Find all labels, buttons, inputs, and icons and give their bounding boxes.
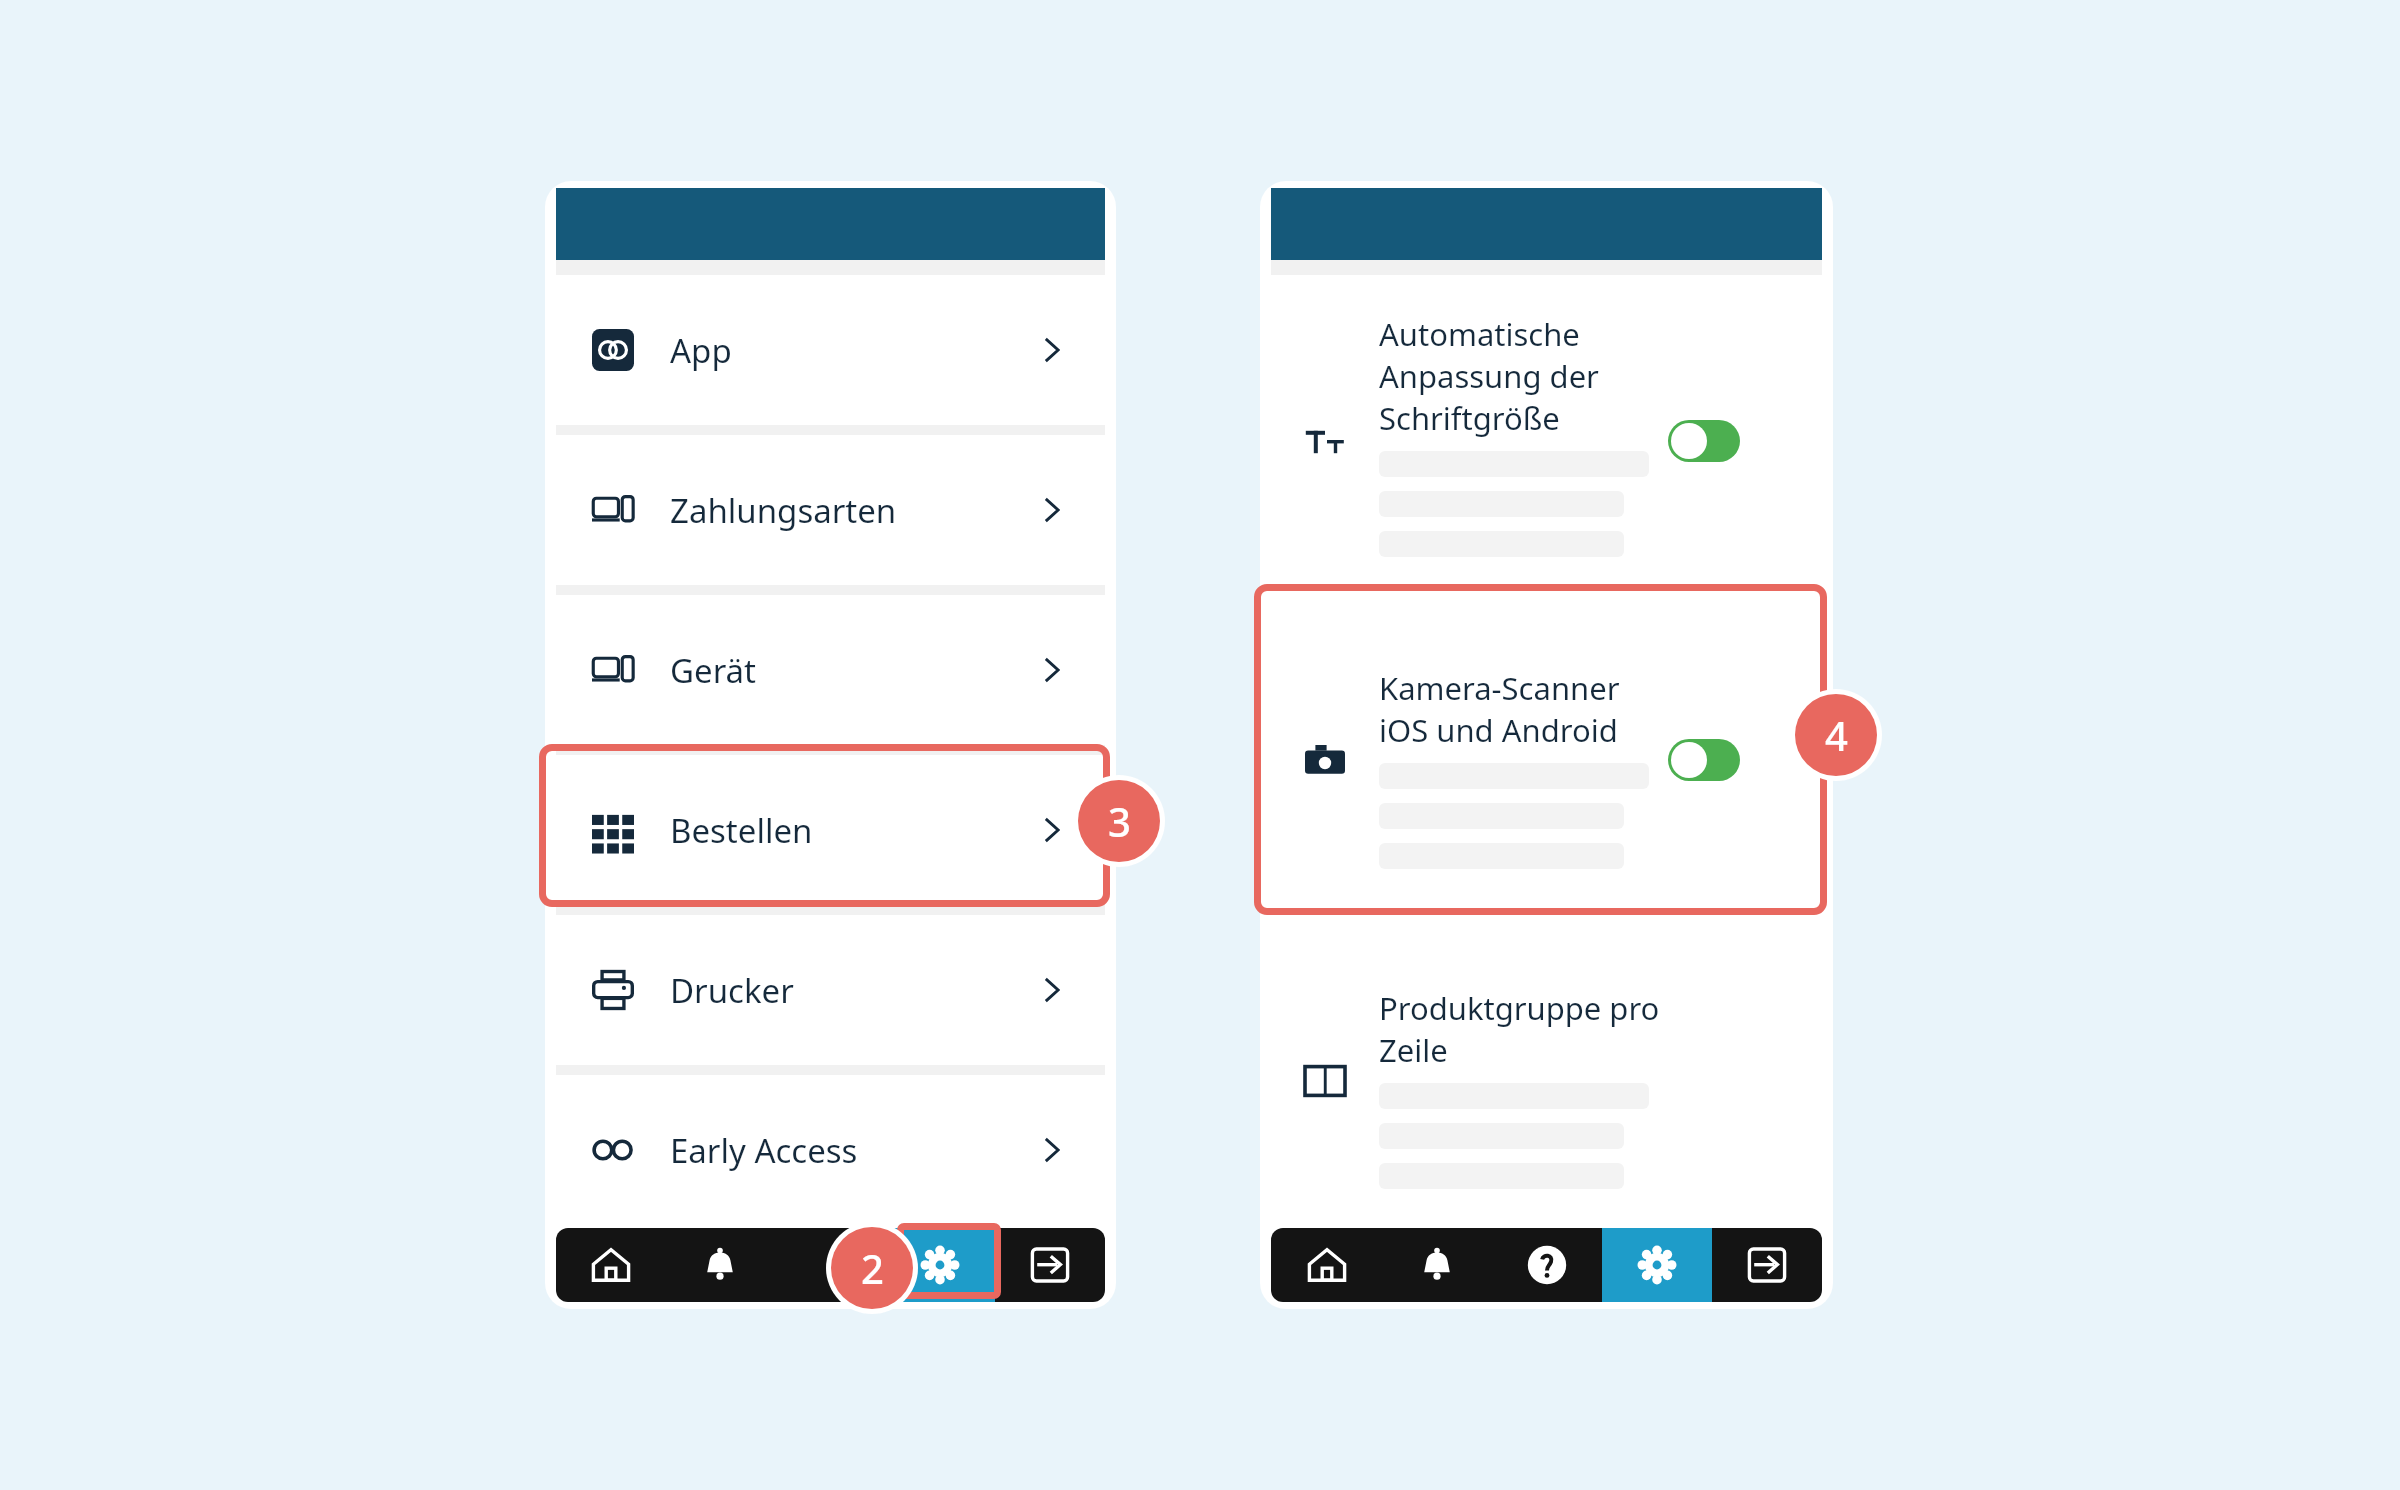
button[interactable]: Logout [995,1228,1105,1302]
staticText: 3 [1108,794,1131,848]
button[interactable] [1668,420,1740,462]
button[interactable]: Home [556,1228,665,1302]
button[interactable]: Drucker [556,915,1105,1065]
staticText: Automatische [1379,313,1580,355]
button[interactable]: Early Access [556,1075,1105,1225]
staticText: Anpassung der [1379,355,1599,397]
staticText: 4 [1825,708,1848,762]
button[interactable]: App [556,275,1105,425]
staticText: 2 [861,1241,884,1295]
staticText: iOS und Android [1379,709,1618,751]
staticText: Zahlungsarten [670,488,897,533]
button[interactable]: Gerät [556,595,1105,745]
staticText: Gerät [670,648,757,693]
button[interactable]: Produktgruppe pro [1271,915,1822,1228]
button[interactable]: Help [1492,1228,1602,1302]
button[interactable]: Logout [1712,1228,1822,1302]
staticText: App [670,328,732,373]
button[interactable]: Kamera-Scanner [1271,595,1822,915]
button[interactable]: Bestellen [556,755,1105,905]
staticText: Bestellen [670,808,813,853]
button[interactable]: Notifications [1382,1228,1492,1302]
staticText: Drucker [670,968,794,1013]
button[interactable]: Zahlungsarten [556,435,1105,585]
button[interactable]: Automatische [1271,275,1822,595]
staticText: Schriftgröße [1379,397,1560,439]
staticText: Kamera-Scanner [1379,667,1620,709]
button[interactable]: Notifications [665,1228,775,1302]
staticText: Early Access [670,1128,858,1173]
button[interactable]: Settings [1602,1228,1712,1302]
button[interactable]: Settings [885,1228,995,1302]
staticText: Produktgruppe pro [1379,987,1660,1029]
button[interactable] [1668,739,1740,781]
button[interactable]: Home [1271,1228,1382,1302]
staticText: Zeile [1379,1029,1448,1071]
button[interactable]: Help [775,1228,885,1302]
